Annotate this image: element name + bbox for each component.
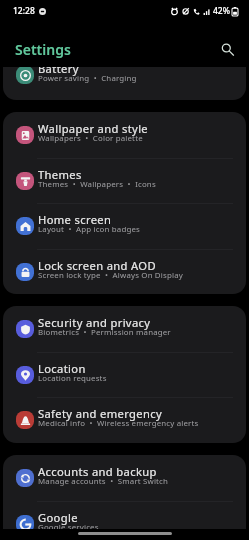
button[interactable]: Battery [3, 67, 246, 98]
button[interactable]: Lock screen and AOD [3, 249, 246, 294]
button[interactable]: Security and privacy [3, 306, 246, 352]
staticText: Location [38, 361, 86, 376]
button[interactable]: Safety and emergency [3, 397, 246, 443]
staticText: 12:28 [13, 5, 35, 17]
button[interactable]: Wallpaper and style [3, 112, 246, 158]
staticText: Safety and emergency [38, 406, 162, 421]
staticText: Settings [15, 40, 71, 59]
staticText: Medical info • Wireless emergency alerts [38, 418, 199, 429]
staticText: Themes [38, 167, 82, 182]
staticText: Layout • App icon badges [38, 224, 140, 235]
button[interactable]: Accounts and backup [3, 455, 246, 501]
staticText: Themes • Wallpapers • Icons [38, 179, 156, 190]
button[interactable]: Google [3, 501, 246, 529]
button[interactable]: Location [3, 352, 246, 398]
staticText: Power saving • Charging [38, 73, 137, 84]
staticText: Google [38, 510, 78, 525]
staticText: 42% [213, 5, 230, 17]
staticText: Wallpapers • Color palette [38, 133, 143, 144]
staticText: Google services [38, 522, 99, 529]
staticText: Lock screen and AOD [38, 258, 156, 273]
staticText: Location requests [38, 373, 107, 384]
button[interactable]: Search [216, 38, 238, 60]
staticText: Screen lock type • Always On Display [38, 270, 183, 281]
staticText: Manage accounts • Smart Switch [38, 476, 169, 487]
staticText: Home screen [38, 212, 112, 227]
button[interactable]: Themes [3, 158, 246, 204]
staticText: Security and privacy [38, 315, 151, 330]
staticText: Accounts and backup [38, 464, 157, 479]
staticText: Battery [38, 67, 79, 76]
staticText: Wallpaper and style [38, 121, 149, 136]
staticText: Biometrics • Permission manager [38, 327, 171, 338]
button[interactable]: Home screen [3, 203, 246, 249]
